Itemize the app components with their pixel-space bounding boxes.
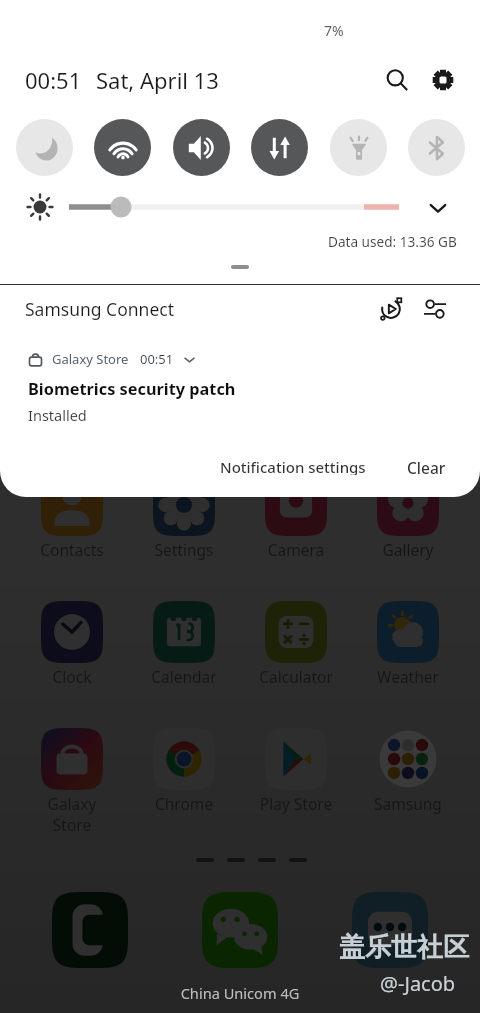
staticText: Samsung: [364, 793, 452, 814]
button[interactable]: Messages: [352, 892, 428, 968]
button[interactable]: Sound: [173, 119, 230, 176]
button[interactable]: WeChat: [202, 892, 278, 968]
staticText: @-Jacob: [380, 970, 456, 997]
staticText: Notification settings: [220, 457, 366, 475]
button[interactable]: Flashlight: [330, 119, 387, 176]
button[interactable]: Phone: [52, 892, 128, 968]
button[interactable]: Device control: [418, 292, 452, 326]
staticText: 00:51: [25, 65, 82, 95]
staticText: Contacts: [28, 539, 116, 560]
staticText: Installed: [28, 405, 87, 425]
button[interactable]: Gallery: [364, 470, 452, 554]
staticText: China Unicom 4G: [0, 983, 480, 1003]
button[interactable]: Settings: [423, 60, 463, 100]
button[interactable]: Expand quick settings: [424, 194, 452, 222]
button[interactable]: Galaxy Store: [28, 724, 116, 808]
button[interactable]: Chrome: [140, 724, 228, 808]
button[interactable]: Notification settings: [212, 448, 374, 484]
staticText: Clear: [407, 457, 446, 475]
staticText: Gallery: [364, 539, 452, 560]
staticText: Biometrics security patch: [28, 378, 236, 400]
button[interactable]: Wi-Fi: [94, 119, 151, 176]
button[interactable]: Camera: [252, 470, 340, 554]
button[interactable]: Mobile data: [251, 119, 308, 176]
button[interactable]: Do not disturb: [16, 119, 73, 176]
staticText: Weather: [364, 666, 452, 687]
button[interactable]: Bluetooth: [408, 119, 465, 176]
button[interactable]: Galaxy Store: [0, 340, 480, 435]
button[interactable]: [231, 265, 249, 269]
staticText: Chrome: [140, 793, 228, 814]
staticText: Clock: [28, 666, 116, 687]
staticText: Calculator: [252, 666, 340, 687]
button[interactable]: Weather: [364, 597, 452, 681]
button[interactable]: Calculator: [252, 597, 340, 681]
staticText: 7%: [324, 21, 344, 40]
staticText: Sat, April 13: [96, 65, 219, 95]
button[interactable]: Media output: [374, 292, 408, 326]
button[interactable]: Samsung: [364, 724, 452, 808]
button[interactable]: Clear: [399, 448, 454, 484]
staticText: 00:51: [140, 350, 174, 368]
staticText: Galaxy Store: [52, 350, 129, 368]
staticText: Samsung Connect: [25, 297, 174, 321]
staticText: Data used: 13.36 GB: [328, 232, 457, 251]
button[interactable]: Play Store: [252, 724, 340, 808]
button[interactable]: Calendar: [140, 597, 228, 681]
staticText: Play Store: [252, 793, 340, 814]
button[interactable]: Settings: [140, 470, 228, 554]
button[interactable]: Contacts: [28, 470, 116, 554]
staticText: Settings: [140, 539, 228, 560]
staticText: Galaxy Store: [28, 793, 116, 835]
staticText: Calendar: [140, 666, 228, 687]
staticText: Camera: [252, 539, 340, 560]
button[interactable]: Clock: [28, 597, 116, 681]
staticText: 盖乐世社区: [339, 931, 469, 964]
button[interactable]: Search: [377, 60, 417, 100]
